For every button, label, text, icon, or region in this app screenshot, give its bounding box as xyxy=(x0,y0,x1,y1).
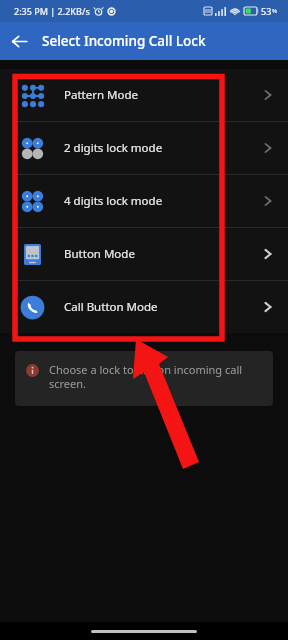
staticText: Call Button Mode xyxy=(64,299,158,315)
staticText: 53 xyxy=(261,5,272,17)
staticText: Select Incoming Call Lock xyxy=(42,32,206,50)
staticText: Button Mode xyxy=(64,246,135,262)
staticText: Pattern Mode xyxy=(64,87,138,103)
button[interactable]: Call Button Mode xyxy=(0,281,288,333)
button[interactable]: Pattern Mode xyxy=(0,69,288,121)
staticText: 4 digits lock mode xyxy=(64,193,163,209)
staticText: Choose a lock to use on incoming call sc… xyxy=(49,362,262,391)
button[interactable]: Home xyxy=(91,630,197,633)
button[interactable]: Button Mode xyxy=(0,228,288,280)
button[interactable]: 2 digits lock mode xyxy=(0,122,288,174)
staticText: 2:35 PM | 2.2KB/s xyxy=(14,5,90,17)
staticText: 2 digits lock mode xyxy=(64,140,163,156)
button[interactable]: Back xyxy=(0,22,38,60)
button[interactable]: 4 digits lock mode xyxy=(0,175,288,227)
staticText: % xyxy=(272,7,278,15)
